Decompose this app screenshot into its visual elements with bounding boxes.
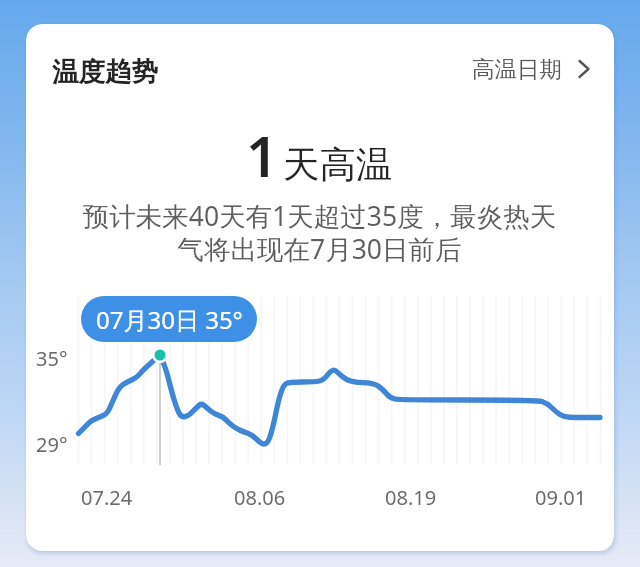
staticText: 温度趋势 [52,55,158,88]
other: 查看高温日期 [570,55,598,83]
staticText: 35° [36,345,68,372]
staticText: 09.01 [535,484,587,511]
button[interactable]: 07月30日 35° [81,296,257,342]
staticText: 08.19 [385,484,437,511]
staticText: 08.06 [234,484,286,511]
button[interactable]: 高温日期 [468,53,594,85]
staticText: 07月30日 35° [96,303,243,336]
staticText: 07.24 [81,484,133,511]
staticText: 天高温 [283,142,393,188]
staticText: 1 [246,117,279,193]
staticText: 高温日期 [472,55,562,83]
button[interactable]: 温度趋势 [52,55,158,88]
staticText: 预计未来40天有1天超过35度，最炎热天气将出现在7月30日前后 [73,198,566,267]
staticText: 29° [36,431,68,458]
